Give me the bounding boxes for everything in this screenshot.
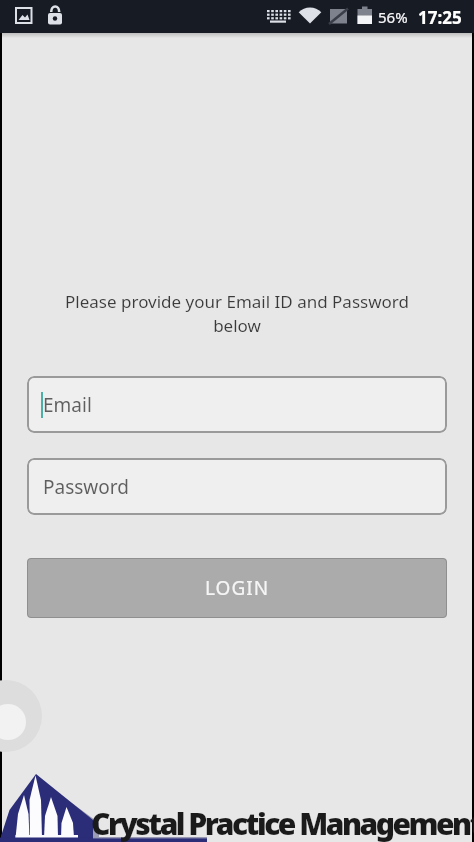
- staticText: Email: [43, 392, 92, 418]
- staticText: 17:25: [418, 6, 462, 29]
- button[interactable]: Email: [27, 376, 447, 433]
- staticText: Please provide your Email ID and Passwor…: [0, 290, 474, 337]
- staticText: LOGIN: [205, 575, 270, 601]
- staticText: Crystal Practice Management: [91, 803, 474, 842]
- staticText: 56%: [378, 7, 408, 27]
- button[interactable]: LOGIN: [27, 558, 447, 618]
- button[interactable]: Password: [27, 458, 447, 515]
- staticText: Password: [43, 474, 129, 500]
